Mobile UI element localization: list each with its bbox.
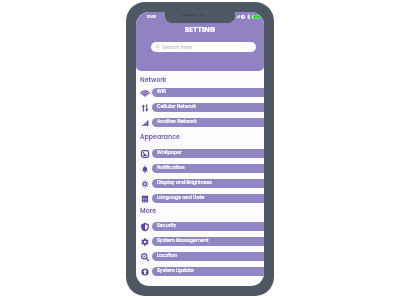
staticText: System Update — [157, 267, 194, 274]
staticText: System Management — [157, 237, 209, 244]
staticText: Wifi — [157, 88, 166, 95]
button[interactable]: Language and Date — [136, 194, 264, 203]
button[interactable]: System Management — [136, 237, 264, 246]
staticText: Security — [157, 222, 177, 229]
button[interactable]: Location — [136, 252, 264, 261]
staticText: Appearance — [140, 132, 180, 141]
button[interactable]: System Update — [136, 267, 264, 276]
staticText: Location — [157, 252, 178, 259]
button[interactable]: Cellular Network — [136, 103, 264, 112]
button[interactable]: Security — [136, 222, 264, 231]
button[interactable]: Another Network — [136, 118, 264, 127]
button[interactable]: Wallpaper — [136, 149, 264, 158]
staticText: Network — [140, 75, 167, 84]
staticText: Language and Date — [157, 194, 205, 201]
staticText: Wallpaper — [157, 149, 182, 156]
staticText: Another Network — [157, 118, 197, 125]
staticText: Display and Brightness — [157, 179, 212, 186]
staticText: Cellular Network — [157, 103, 197, 110]
button[interactable]: Wifi — [136, 88, 264, 97]
staticText: More — [140, 206, 157, 215]
button[interactable]: Search here — [151, 42, 256, 52]
button[interactable]: Notification — [136, 164, 264, 173]
button[interactable]: Display and Brightness — [136, 179, 264, 188]
staticText: Search here — [162, 44, 193, 51]
staticText: SETTING — [136, 24, 264, 34]
staticText: 10:00 — [147, 14, 157, 19]
staticText: Notification — [157, 164, 185, 171]
